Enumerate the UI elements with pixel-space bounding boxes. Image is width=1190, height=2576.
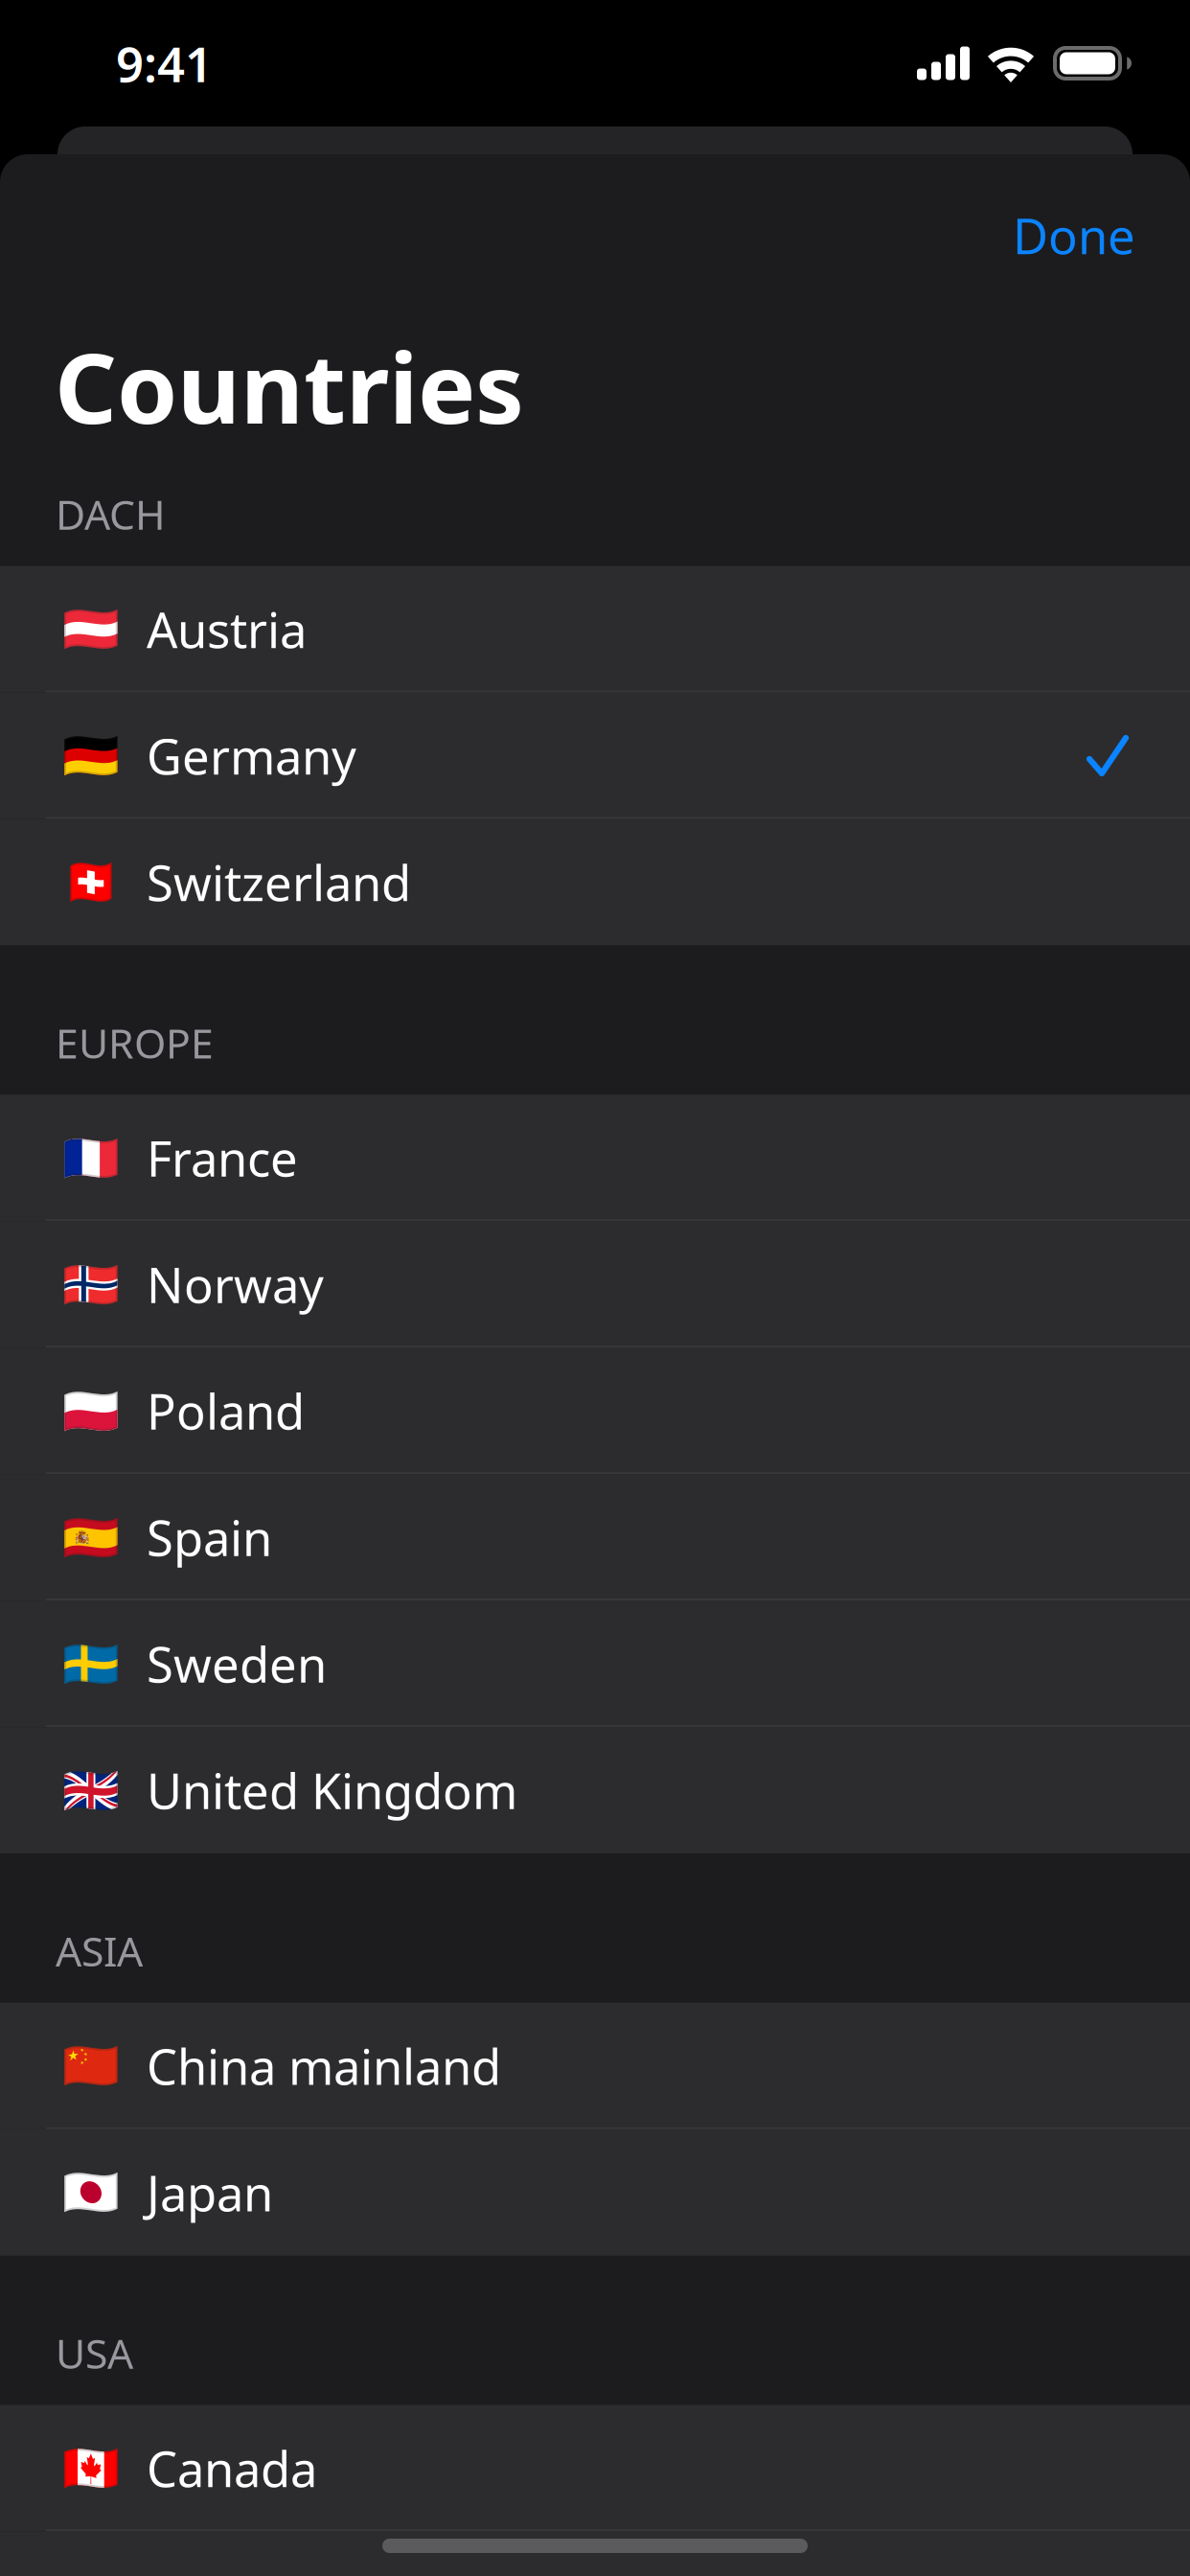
staticText: 🇵🇱 — [62, 1385, 120, 1437]
staticText: 9:41 — [116, 31, 213, 96]
button[interactable]: 🇯🇵 — [0, 2129, 1190, 2256]
button[interactable]: 🇳🇴 — [0, 1221, 1190, 1348]
staticText: 🇩🇪 — [62, 729, 120, 782]
staticText: ASIA — [56, 1924, 143, 1978]
button[interactable]: 🇨🇭 — [0, 819, 1190, 945]
staticText: United Kingdom — [147, 1758, 517, 1823]
button[interactable]: 🇨🇳 — [0, 2003, 1190, 2129]
staticText: Switzerland — [147, 850, 411, 914]
button[interactable]: 🇬🇧 — [0, 1727, 1190, 1854]
staticText: DACH — [56, 487, 166, 541]
button[interactable]: 🇵🇱 — [0, 1348, 1190, 1474]
staticText: Countries — [55, 321, 524, 450]
staticText: 🇫🇷 — [62, 1132, 120, 1184]
staticText: 🇨🇳 — [62, 2040, 120, 2092]
staticText: USA — [56, 2326, 133, 2380]
staticText: Poland — [147, 1379, 305, 1443]
button[interactable]: 🇫🇷 — [0, 1095, 1190, 1221]
button[interactable]: 🇦🇹 — [0, 566, 1190, 692]
staticText: Sweden — [147, 1632, 327, 1696]
staticText: Norway — [147, 1252, 324, 1317]
button[interactable]: 🇸🇪 — [0, 1601, 1190, 1727]
staticText: 🇸🇪 — [62, 1638, 120, 1690]
button[interactable]: 🇪🇸 — [0, 1474, 1190, 1601]
staticText: Spain — [147, 1505, 272, 1570]
staticText: 🇯🇵 — [62, 2166, 120, 2219]
button[interactable]: Done — [984, 182, 1164, 289]
staticText: 🇨🇭 — [62, 856, 120, 908]
staticText: 🇳🇴 — [62, 1258, 120, 1311]
staticText: 🇦🇹 — [62, 603, 120, 655]
button[interactable]: 🇩🇪 — [0, 692, 1190, 819]
staticText: Canada — [147, 2436, 317, 2500]
staticText: Germany — [147, 723, 356, 788]
staticText: 🇨🇦 — [62, 2442, 120, 2494]
staticText: France — [147, 1126, 298, 1190]
staticText: 🇬🇧 — [62, 1764, 120, 1817]
staticText: 🇪🇸 — [62, 1511, 120, 1564]
staticText: China mainland — [147, 2034, 501, 2098]
staticText: Austria — [147, 597, 307, 661]
staticText: Done — [1013, 203, 1135, 268]
staticText: Japan — [147, 2160, 273, 2225]
button[interactable]: 🇨🇦 — [0, 2405, 1190, 2531]
staticText: EUROPE — [56, 1015, 214, 1070]
